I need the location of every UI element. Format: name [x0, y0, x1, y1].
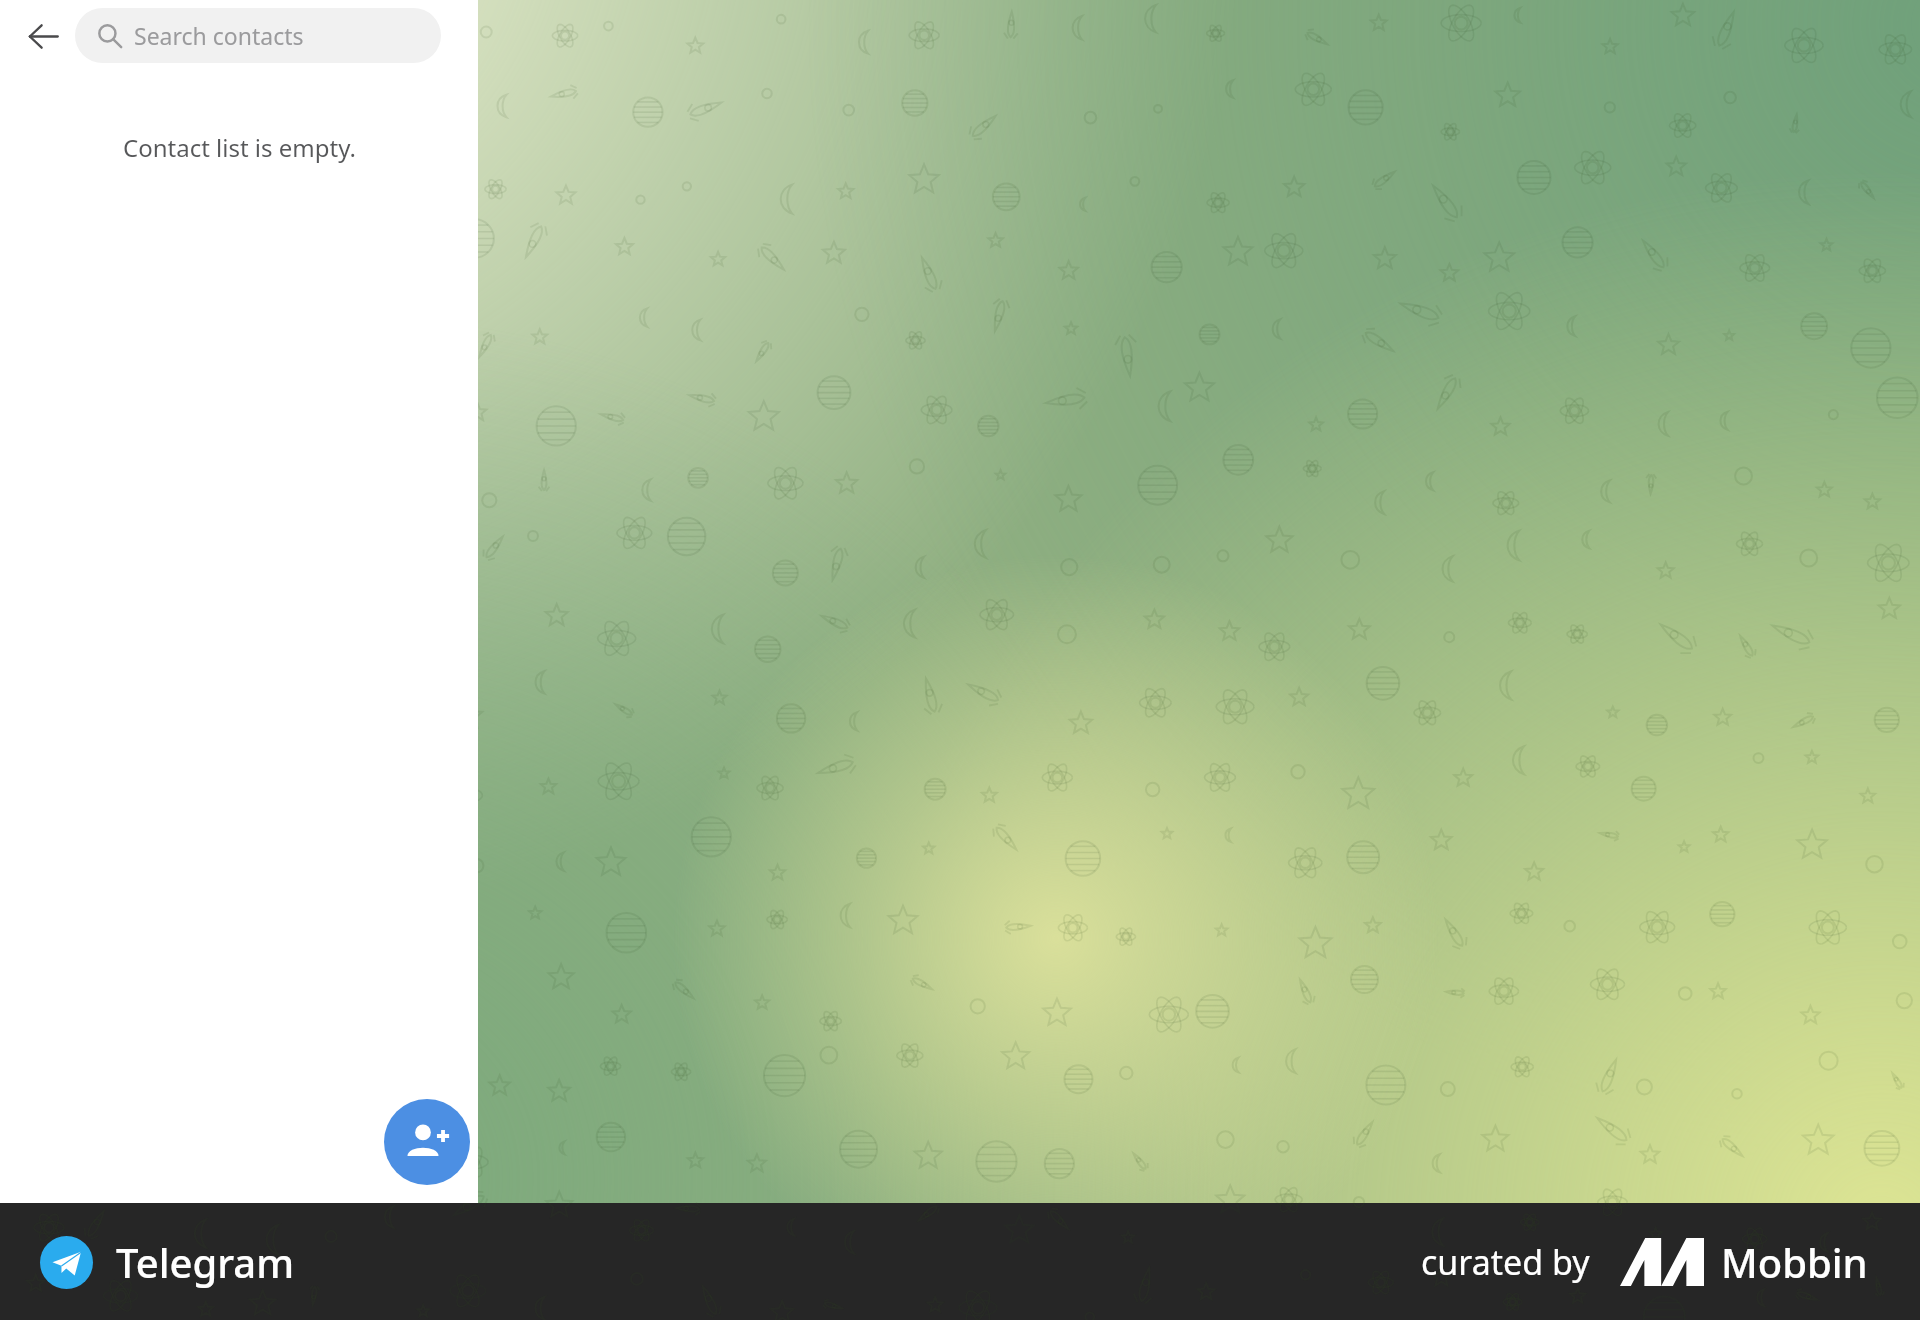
staticText: Search contacts [134, 20, 304, 51]
button[interactable]: Back [19, 12, 67, 60]
staticText: Contact list is empty. [123, 131, 356, 164]
button[interactable]: Search contacts [75, 8, 441, 63]
staticText: curated by [1421, 1239, 1590, 1285]
button[interactable]: Add contact [384, 1099, 470, 1185]
staticText: Mobbin [1721, 1235, 1868, 1289]
staticText: Telegram [116, 1235, 295, 1289]
